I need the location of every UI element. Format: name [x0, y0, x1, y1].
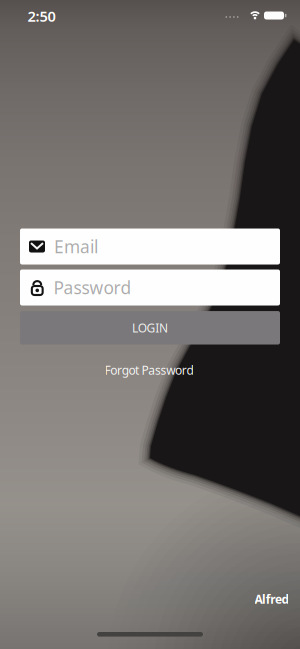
- button[interactable]: Password: [20, 269, 280, 305]
- staticText: LOGIN: [132, 320, 168, 336]
- button[interactable]: Forgot Password: [105, 362, 193, 378]
- button[interactable]: Email: [20, 228, 280, 264]
- staticText: Email: [54, 235, 98, 258]
- staticText: 2:50: [27, 6, 55, 26]
- staticText: Password: [53, 276, 131, 299]
- button[interactable]: LOGIN: [20, 311, 280, 345]
- staticText: Forgot Password: [105, 362, 193, 378]
- staticText: Alfred: [254, 591, 289, 607]
